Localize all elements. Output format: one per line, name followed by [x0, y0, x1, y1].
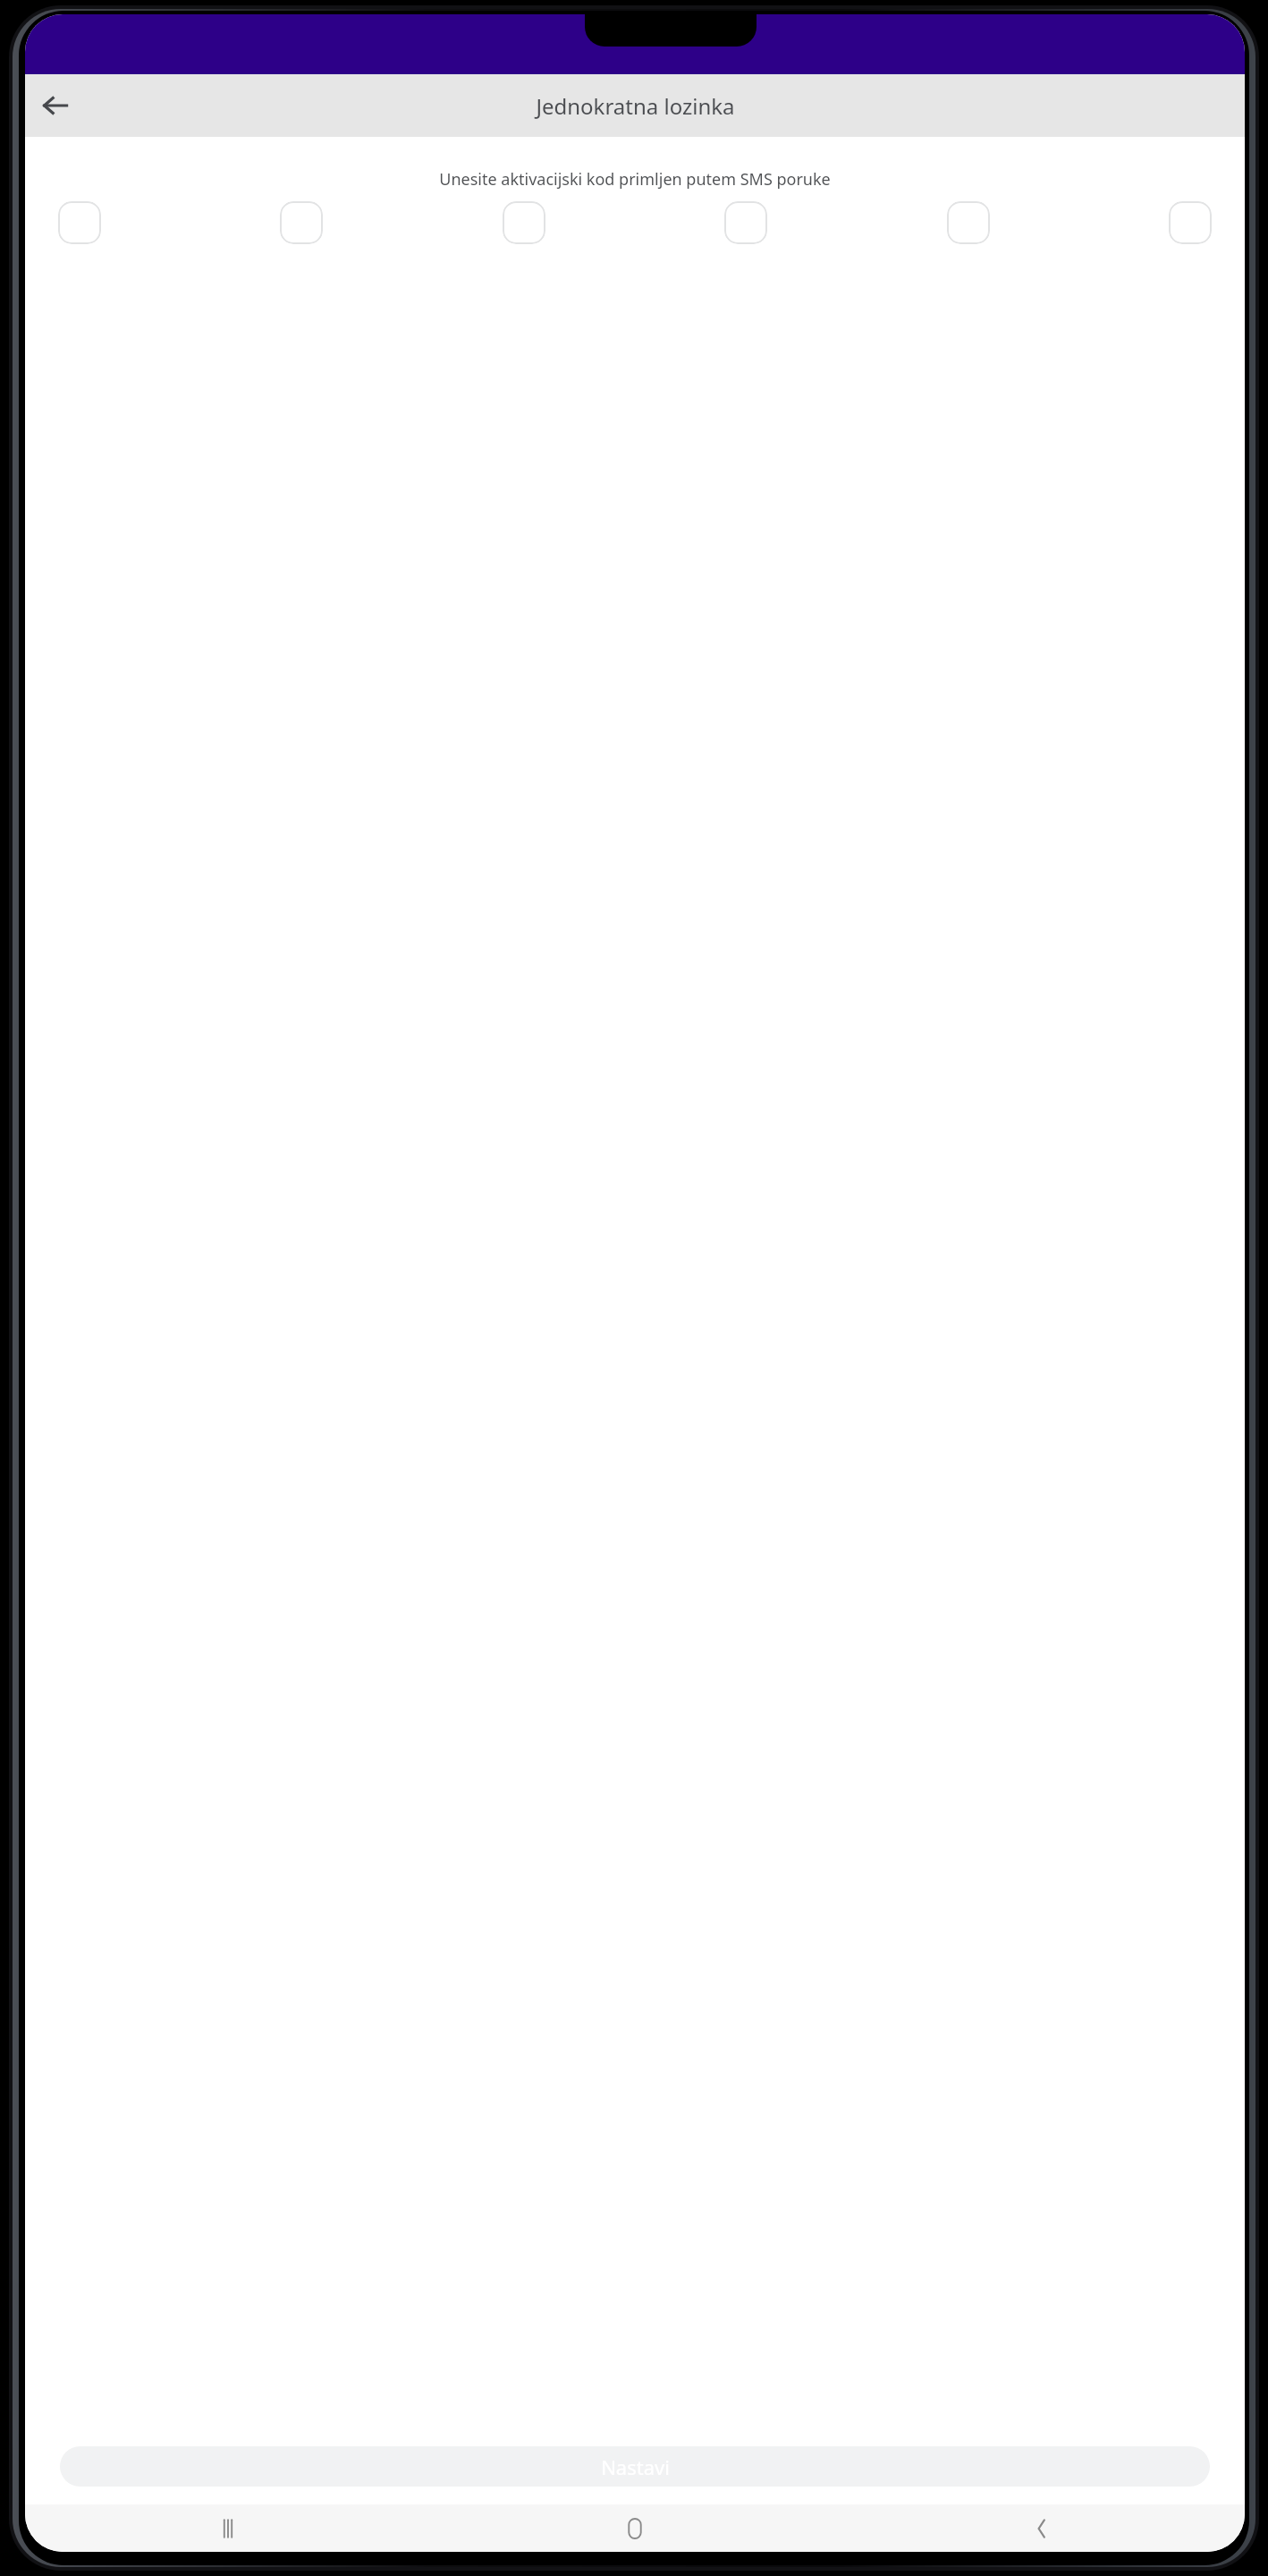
button[interactable]: Digit 1 [58, 201, 101, 244]
button[interactable]: Digit 5 [947, 201, 990, 244]
button[interactable]: Recent apps [25, 2504, 431, 2552]
staticText: Nastavi [601, 2453, 670, 2480]
button[interactable]: Digit 4 [724, 201, 767, 244]
staticText: Unesite aktivacijski kod primljen putem … [39, 168, 1230, 191]
button[interactable]: Back [838, 2504, 1245, 2552]
staticText: Jednokratna lozinka [536, 91, 735, 121]
button[interactable]: Back [30, 80, 80, 131]
button[interactable]: Digit 2 [280, 201, 323, 244]
button[interactable]: Home [431, 2504, 838, 2552]
button[interactable]: Digit 3 [503, 201, 545, 244]
button[interactable]: Digit 6 [1169, 201, 1212, 244]
